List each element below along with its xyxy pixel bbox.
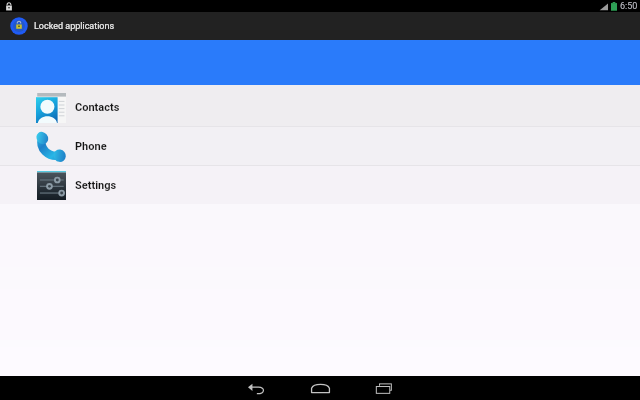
staticText: Locked applications <box>34 21 115 32</box>
staticText: Settings <box>75 179 117 192</box>
button[interactable]: Home <box>288 376 352 400</box>
staticText: Contacts <box>75 101 120 114</box>
button[interactable]: Recent apps <box>352 376 416 400</box>
button[interactable]: Contacts <box>0 88 640 126</box>
button[interactable]: Phone <box>0 127 640 165</box>
button[interactable]: Back <box>224 376 288 400</box>
button[interactable]: Settings <box>0 166 640 204</box>
staticText: 6:50 <box>620 1 638 12</box>
button[interactable]: Locked applications <box>0 17 115 35</box>
staticText: Phone <box>75 140 107 153</box>
